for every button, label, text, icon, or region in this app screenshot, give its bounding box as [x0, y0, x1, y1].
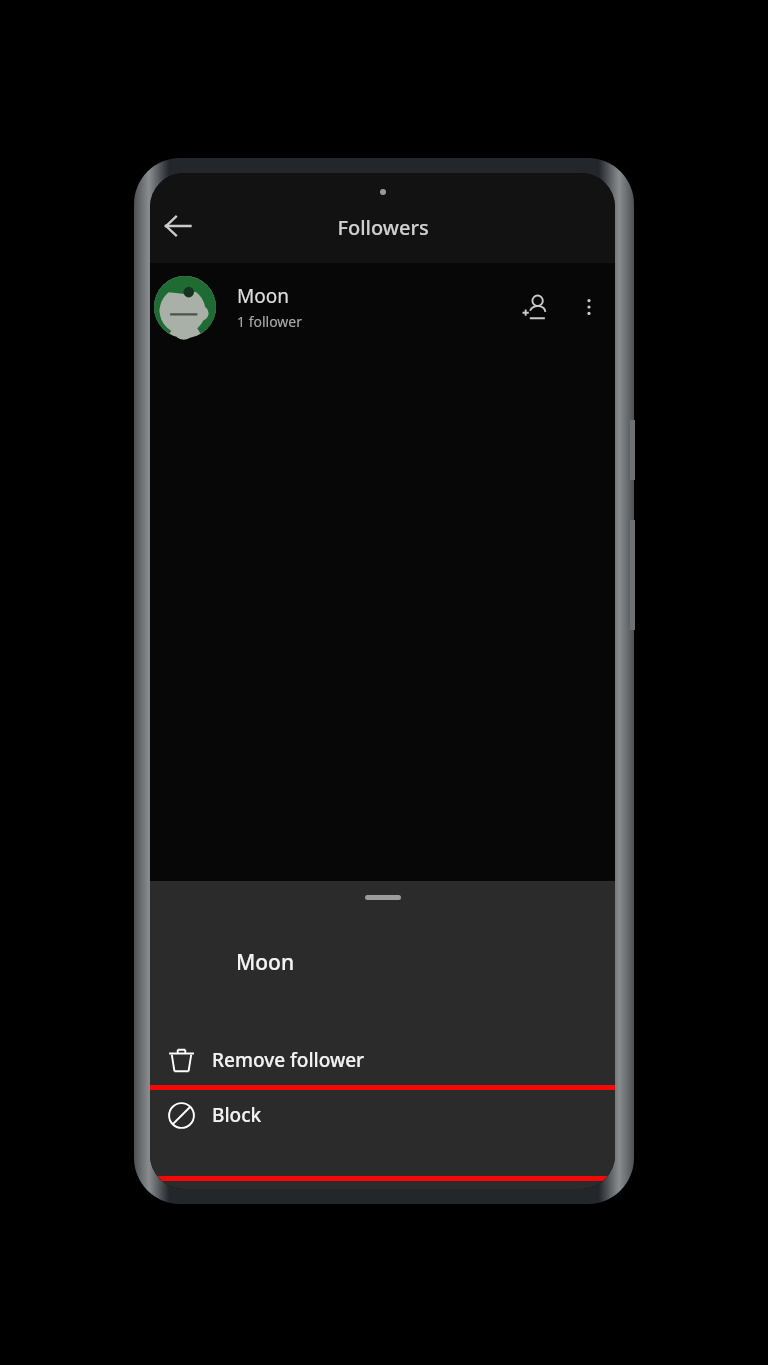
- staticText: 1 follower: [237, 312, 303, 331]
- button[interactable]: More options: [569, 287, 609, 327]
- staticText: Remove follower: [212, 1047, 365, 1073]
- button[interactable]: Back: [150, 198, 206, 254]
- button[interactable]: Block: [150, 1090, 615, 1140]
- staticText: Block: [212, 1102, 262, 1128]
- button[interactable]: Moon: [150, 263, 615, 351]
- button[interactable]: Add follower: [511, 283, 559, 331]
- staticText: Followers: [337, 214, 429, 241]
- staticText: Moon: [236, 948, 295, 977]
- staticText: Moon: [237, 283, 289, 309]
- button[interactable]: Remove follower: [150, 1035, 615, 1085]
